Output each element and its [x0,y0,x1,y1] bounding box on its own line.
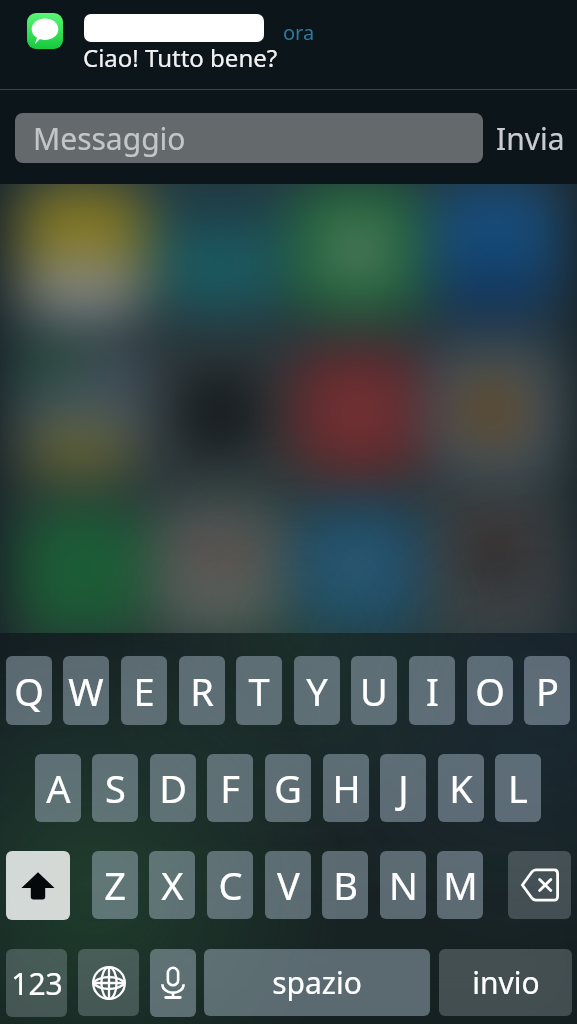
staticText: 123 [11,963,63,1004]
staticText: F [220,762,240,814]
button[interactable]: I [409,656,455,725]
staticText: invio [472,962,540,1003]
staticText: J [398,762,409,814]
staticText: E [133,665,155,717]
staticText: I [426,665,439,717]
button[interactable]: Backspace [508,851,571,919]
button[interactable]: F [207,754,253,822]
button[interactable]: Dictation [150,949,196,1017]
button[interactable]: T [236,656,282,725]
staticText: N [389,859,418,911]
staticText: Y [306,665,328,717]
staticText: Ciao! Tutto bene? [83,41,278,74]
staticText: H [332,762,361,814]
staticText: Z [104,859,126,911]
button[interactable]: X [149,851,195,919]
staticText: K [449,762,473,814]
button[interactable]: Z [92,851,138,919]
button[interactable]: J [380,754,426,822]
button[interactable]: 123 [6,949,67,1017]
button[interactable]: H [323,754,369,822]
button[interactable]: W [63,656,109,725]
staticText: G [274,762,302,814]
staticText: M [443,859,478,911]
staticText: B [333,859,358,911]
staticText: P [536,665,559,717]
button[interactable]: R [179,656,225,725]
button[interactable]: D [150,754,196,822]
staticText: L [508,762,528,814]
staticText: R [190,665,214,717]
button[interactable]: Y [294,656,340,725]
staticText: O [475,665,505,717]
staticText: spazio [272,962,362,1003]
button[interactable]: Messaggio [15,113,483,163]
button[interactable]: invio [439,949,572,1016]
button[interactable]: O [467,656,513,725]
staticText: C [218,859,243,911]
button[interactable]: C [207,851,253,919]
button[interactable]: K [438,754,484,822]
staticText: S [105,762,126,814]
button[interactable]: B [322,851,368,919]
staticText: X [161,859,184,911]
staticText: V [277,859,300,911]
staticText: Q [14,665,44,717]
button[interactable]: N [380,851,426,919]
button[interactable]: Invia [490,113,570,163]
button[interactable]: U [351,656,397,725]
staticText: D [159,762,187,814]
button[interactable]: Shift [6,851,70,920]
button[interactable]: G [265,754,311,822]
staticText: ora [283,19,315,46]
staticText: T [248,665,270,717]
button[interactable]: E [121,656,167,725]
button[interactable]: P [524,656,570,725]
staticText: U [360,665,388,717]
staticText: Invia [496,118,565,159]
button[interactable]: spazio [204,949,430,1016]
button[interactable]: V [265,851,311,919]
staticText: Messaggio [33,118,186,159]
staticText: W [68,665,104,717]
button[interactable]: M [437,851,483,919]
button[interactable]: Q [6,656,52,725]
staticText: A [46,762,71,814]
button[interactable]: Change language [78,949,139,1016]
button[interactable]: S [92,754,138,822]
button[interactable]: A [35,754,81,822]
button[interactable]: L [495,754,541,822]
